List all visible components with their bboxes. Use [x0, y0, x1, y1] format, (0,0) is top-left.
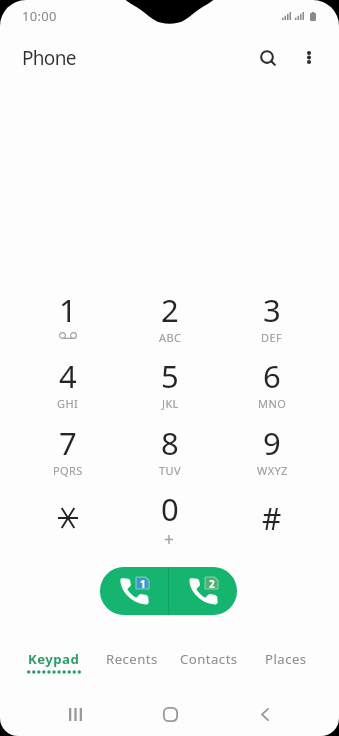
staticText: 7	[59, 422, 77, 464]
staticText: DEF	[261, 330, 283, 345]
staticText: Contacts	[180, 650, 238, 668]
button[interactable]: Call using SIM 2	[169, 567, 237, 615]
staticText: 0	[161, 488, 179, 530]
button[interactable]: Search	[246, 35, 290, 79]
staticText: PQRS	[53, 463, 83, 478]
button[interactable]: Contacts	[170, 646, 247, 684]
button[interactable]: Recent apps	[47, 686, 103, 736]
button[interactable]: Recents	[93, 646, 170, 684]
staticText: 10:00	[22, 7, 57, 25]
staticText: 1	[140, 577, 146, 589]
staticText: 4	[59, 355, 77, 397]
staticText: Phone	[22, 45, 76, 71]
button[interactable]: Home	[142, 686, 198, 736]
staticText: Keypad	[28, 650, 80, 668]
button[interactable]: 3	[221, 278, 323, 344]
button[interactable]: Back	[237, 686, 293, 736]
staticText: JKL	[162, 396, 179, 411]
button[interactable]	[17, 477, 119, 543]
button[interactable]: Call using SIM 1	[100, 567, 168, 615]
staticText: 9	[263, 422, 281, 464]
staticText: 5	[161, 355, 179, 397]
staticText: MNO	[258, 396, 287, 411]
staticText: 3	[263, 289, 281, 331]
staticText: ABC	[159, 330, 182, 345]
button[interactable]: 7	[17, 411, 119, 477]
button[interactable]: More options	[288, 35, 330, 77]
staticText: 6	[263, 355, 281, 397]
button[interactable]: #	[221, 477, 323, 543]
staticText: 8	[161, 422, 179, 464]
button[interactable]: 1	[17, 278, 119, 344]
button[interactable]: 8	[119, 411, 221, 477]
staticText: #	[262, 498, 282, 539]
button[interactable]: 5	[119, 344, 221, 410]
button[interactable]: 9	[221, 411, 323, 477]
staticText: TUV	[159, 463, 181, 478]
button[interactable]: Places	[247, 646, 324, 684]
staticText: GHI	[57, 396, 79, 411]
staticText: 2	[161, 289, 179, 331]
button[interactable]: 4	[17, 344, 119, 410]
button[interactable]: 6	[221, 344, 323, 410]
staticText: Recents	[106, 650, 158, 668]
staticText: 2	[209, 577, 215, 589]
staticText: WXYZ	[257, 463, 288, 478]
button[interactable]: Keypad	[15, 646, 93, 684]
staticText: 1	[59, 289, 77, 331]
button[interactable]: 2	[119, 278, 221, 344]
button[interactable]: 0	[119, 477, 221, 543]
staticText: Places	[265, 650, 307, 668]
